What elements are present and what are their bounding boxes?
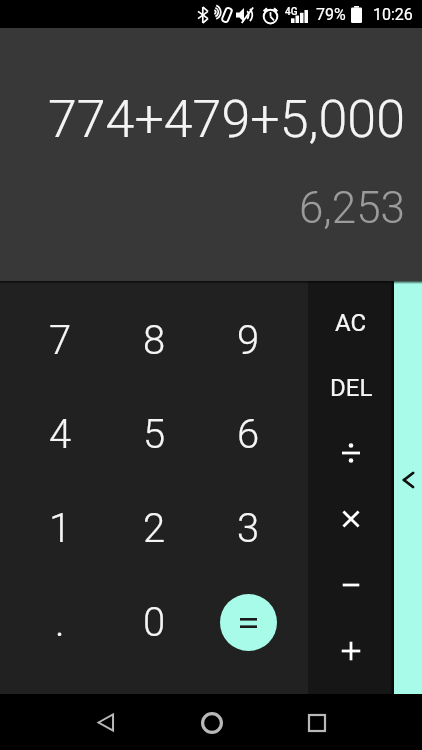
button[interactable]: Home bbox=[185, 696, 238, 749]
button[interactable]: Plus bbox=[308, 618, 394, 684]
button[interactable]: 1 bbox=[13, 481, 107, 575]
button[interactable]: 4 bbox=[13, 387, 107, 481]
button[interactable]: 8 bbox=[107, 294, 201, 387]
button[interactable]: Show advanced pad bbox=[394, 281, 422, 694]
button[interactable]: Minus bbox=[308, 552, 394, 618]
button[interactable]: 2 bbox=[107, 481, 201, 575]
button[interactable]: Equals bbox=[201, 575, 295, 669]
staticText: 2 bbox=[143, 505, 166, 552]
button[interactable]: AC bbox=[308, 290, 394, 355]
staticText: 7 bbox=[49, 317, 72, 364]
staticText: 6,253 bbox=[298, 182, 405, 234]
staticText: 4G bbox=[285, 6, 298, 18]
staticText: 3 bbox=[237, 505, 260, 552]
button[interactable]: Back bbox=[79, 696, 132, 749]
button[interactable]: 9 bbox=[201, 294, 295, 387]
staticText: AC bbox=[335, 309, 367, 337]
button[interactable]: Divide bbox=[308, 420, 394, 486]
staticText: 8 bbox=[143, 317, 166, 364]
staticText: 5 bbox=[143, 411, 166, 458]
staticText: 0 bbox=[143, 599, 166, 646]
button[interactable]: 6 bbox=[201, 387, 295, 481]
button[interactable]: . bbox=[13, 575, 107, 669]
button[interactable]: DEL bbox=[308, 355, 394, 420]
staticText: 10:26 bbox=[373, 5, 413, 24]
staticText: DEL bbox=[330, 374, 373, 402]
button[interactable]: 7 bbox=[13, 294, 107, 387]
button[interactable]: 3 bbox=[201, 481, 295, 575]
staticText: 9 bbox=[237, 317, 260, 364]
button[interactable]: 5 bbox=[107, 387, 201, 481]
button[interactable]: Recent apps bbox=[290, 696, 343, 749]
button[interactable]: 0 bbox=[107, 575, 201, 669]
staticText: 6 bbox=[237, 411, 260, 458]
staticText: 1 bbox=[49, 505, 72, 552]
staticText: 774+479+5,000 bbox=[47, 89, 405, 150]
staticText: 79% bbox=[316, 5, 346, 24]
button[interactable]: Multiply bbox=[308, 486, 394, 552]
staticText: . bbox=[55, 599, 65, 646]
staticText: 4 bbox=[49, 411, 72, 458]
